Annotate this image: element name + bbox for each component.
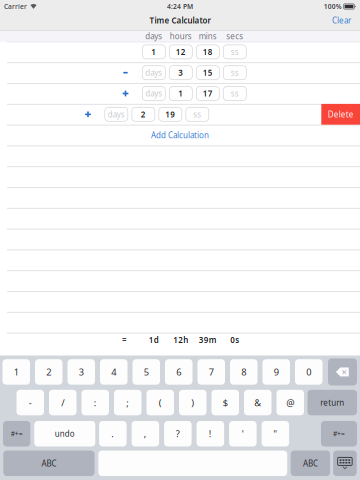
staticText: 19 — [165, 109, 175, 120]
staticText: 2 — [141, 109, 146, 120]
staticText: @ — [286, 396, 294, 409]
button[interactable]: 3 — [67, 359, 95, 385]
staticText: secs — [226, 31, 243, 41]
staticText: undo — [55, 428, 75, 439]
staticText: Clear — [332, 15, 351, 26]
staticText: 1 — [151, 47, 156, 57]
staticText: 15 — [203, 67, 213, 78]
staticText: 3 — [178, 67, 183, 78]
staticText: / — [61, 396, 64, 409]
staticText: 1d — [149, 335, 159, 345]
staticText: 1 — [178, 88, 183, 99]
staticText: " — [273, 428, 277, 440]
button[interactable]: ABC — [3, 451, 95, 476]
button[interactable]: / — [49, 390, 76, 415]
staticText: Add Calculation — [151, 130, 209, 140]
button[interactable]: 7 — [197, 359, 225, 385]
staticText: ss — [231, 47, 239, 57]
staticText: 18 — [203, 47, 213, 57]
staticText: 0 — [306, 366, 311, 378]
staticText: ss — [231, 67, 239, 78]
button[interactable]: return — [307, 390, 357, 415]
staticText: #+= — [11, 429, 23, 438]
staticText: days — [145, 88, 162, 99]
button[interactable]: ) — [179, 390, 206, 415]
button[interactable]: & — [244, 390, 271, 415]
button[interactable]: : — [81, 390, 109, 415]
staticText: #+= — [333, 429, 345, 438]
button[interactable]: 2 — [35, 359, 62, 385]
staticText: 6 — [176, 366, 181, 378]
staticText: ( — [159, 396, 162, 409]
staticText: 17 — [203, 88, 213, 99]
staticText: mins — [199, 31, 217, 41]
staticText: ABC — [303, 458, 318, 469]
staticText: Carrier — [4, 2, 27, 11]
staticText: $ — [223, 396, 228, 409]
staticText: 12 — [176, 47, 186, 57]
button[interactable]: 1 — [2, 359, 30, 385]
staticText: , — [144, 428, 147, 440]
staticText: hours — [170, 31, 192, 41]
staticText: days — [145, 67, 162, 78]
button[interactable]: 0 — [295, 359, 322, 385]
staticText: 12h — [173, 335, 188, 345]
staticText: 1 — [14, 366, 19, 378]
button[interactable]: Add Calculation — [0, 125, 360, 145]
button[interactable]: Delete — [328, 358, 357, 385]
staticText: days — [145, 31, 162, 41]
button[interactable]: - — [16, 390, 44, 415]
button[interactable]: 8 — [230, 359, 257, 385]
staticText: ' — [242, 428, 244, 440]
staticText: 4:24 PM — [167, 2, 193, 11]
staticText: 8 — [241, 366, 246, 378]
button[interactable]: ? — [164, 421, 192, 446]
staticText: 39m — [199, 335, 217, 345]
staticText: = — [122, 335, 127, 345]
button[interactable]: Clear — [327, 12, 356, 29]
button[interactable]: #+= — [321, 421, 357, 446]
button[interactable]: ABC — [291, 451, 330, 476]
staticText: ! — [209, 428, 212, 440]
button[interactable]: . — [99, 421, 127, 446]
button[interactable]: $ — [211, 390, 239, 415]
button[interactable]: #+= — [3, 421, 30, 446]
button[interactable]: ' — [229, 421, 257, 446]
staticText: ) — [191, 396, 194, 409]
staticText: 0s — [230, 335, 239, 345]
button[interactable]: Hide keyboard — [333, 451, 357, 476]
staticText: ss — [193, 109, 201, 120]
button[interactable]: ( — [146, 390, 174, 415]
staticText: 7 — [209, 366, 214, 378]
staticText: 100% — [324, 2, 342, 11]
staticText: ABC — [41, 458, 56, 469]
staticText: 2 — [46, 366, 51, 378]
button[interactable]: " — [262, 421, 289, 446]
staticText: ss — [231, 88, 239, 99]
staticText: days — [108, 109, 125, 120]
staticText: Time Calculator — [149, 15, 210, 26]
button[interactable]: @ — [276, 390, 304, 415]
button[interactable]: ; — [114, 390, 141, 415]
button[interactable]: undo — [34, 421, 95, 446]
button[interactable]: 5 — [132, 359, 160, 385]
staticText: return — [320, 397, 344, 408]
staticText: : — [94, 396, 97, 409]
button[interactable]: 9 — [262, 359, 290, 385]
staticText: ? — [176, 428, 180, 440]
button[interactable]: 6 — [165, 359, 192, 385]
staticText: 5 — [144, 366, 149, 378]
staticText: & — [254, 396, 261, 409]
staticText: 3 — [79, 366, 84, 378]
staticText: . — [111, 428, 114, 440]
button[interactable]: ! — [197, 421, 224, 446]
staticText: ; — [126, 396, 129, 409]
staticText: - — [29, 396, 32, 409]
staticText: Delete — [328, 109, 354, 120]
button[interactable]: 4 — [100, 359, 127, 385]
button[interactable]: , — [132, 421, 159, 446]
button[interactable]: Delete — [321, 104, 360, 125]
staticText: 9 — [274, 366, 279, 378]
staticText: 4 — [111, 366, 116, 378]
